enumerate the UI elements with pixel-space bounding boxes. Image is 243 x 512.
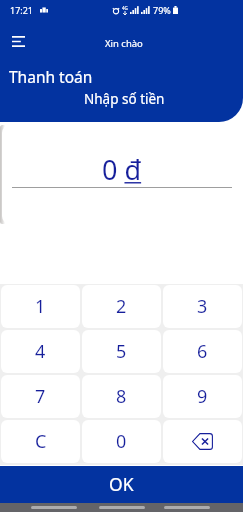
staticText: 0 đ xyxy=(102,151,142,188)
button[interactable]: Backspace xyxy=(163,420,242,463)
button[interactable]: 9 xyxy=(163,375,242,418)
button[interactable]: 2 xyxy=(82,285,161,328)
staticText: 0 xyxy=(116,429,127,454)
button[interactable]: 8 xyxy=(82,375,161,418)
button[interactable]: 7 xyxy=(1,375,80,418)
staticText: 8 xyxy=(116,384,127,409)
staticText: Thanh toán xyxy=(9,66,93,87)
other: Backspace xyxy=(192,433,213,450)
button[interactable]: 3 xyxy=(163,285,242,328)
staticText: 2 xyxy=(116,294,127,319)
button[interactable]: C xyxy=(1,420,80,463)
staticText: 9 xyxy=(197,384,208,409)
button[interactable]: Menu xyxy=(2,28,34,54)
staticText: 1 xyxy=(35,294,46,319)
staticText: 6 xyxy=(197,339,208,364)
staticText: 17:21 xyxy=(10,4,34,16)
button[interactable]: 1 xyxy=(1,285,80,328)
staticText: 4G xyxy=(122,5,128,11)
button[interactable]: 5 xyxy=(82,330,161,373)
staticText: 79% xyxy=(153,4,171,16)
staticText: Nhập số tiền xyxy=(84,90,165,108)
button[interactable]: 0 xyxy=(82,420,161,463)
staticText: OK xyxy=(109,472,134,496)
button[interactable]: OK xyxy=(0,466,243,503)
staticText: 7 xyxy=(35,384,46,409)
staticText: 5 xyxy=(116,339,127,364)
button[interactable]: 4 xyxy=(1,330,80,373)
staticText: C xyxy=(35,429,47,454)
staticText: 4 xyxy=(35,339,46,364)
button[interactable]: 6 xyxy=(163,330,242,373)
staticText: 3 xyxy=(197,294,208,319)
staticText: Xin chào xyxy=(105,37,143,50)
